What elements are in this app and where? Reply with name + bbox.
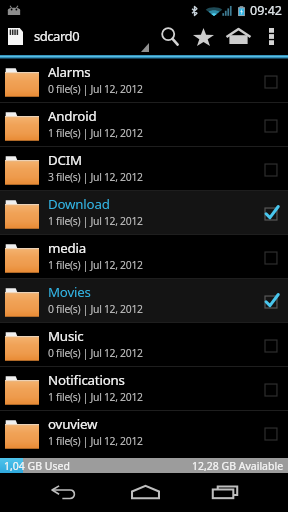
staticText: Download	[48, 195, 110, 213]
button[interactable]: Notifications	[0, 367, 288, 411]
button[interactable]: Select DCIM	[254, 147, 288, 191]
button[interactable]: Select Android	[254, 103, 288, 147]
button[interactable]: Select Download	[254, 191, 288, 235]
button[interactable]: Select Alarms	[254, 59, 288, 103]
staticText: DCIM	[48, 151, 82, 169]
button[interactable]: Recents	[193, 473, 257, 511]
button[interactable]: DCIM	[0, 147, 288, 191]
button[interactable]: Android	[0, 103, 288, 147]
staticText: 1 file(s) | Jul 12, 2012	[48, 258, 143, 272]
button[interactable]: Select Notifications	[254, 367, 288, 411]
staticText: 1 file(s) | Jul 12, 2012	[48, 126, 143, 140]
button[interactable]: media	[0, 235, 288, 279]
staticText: 3 file(s) | Jul 12, 2012	[48, 170, 143, 184]
staticText: 1 file(s) | Jul 12, 2012	[48, 434, 143, 448]
staticText: Alarms	[48, 63, 91, 81]
staticText: media	[48, 239, 86, 257]
staticText: 0 file(s) | Jul 12, 2012	[48, 346, 143, 360]
staticText: sdcard0	[34, 27, 80, 45]
staticText: 0 file(s) | Jul 12, 2012	[48, 82, 143, 96]
staticText: 09:42	[250, 2, 282, 19]
staticText: Movies	[48, 283, 91, 301]
button[interactable]: Select ovuview	[254, 411, 288, 455]
button[interactable]: Download	[0, 191, 288, 235]
button[interactable]: Home	[113, 473, 177, 511]
button[interactable]: ovuview	[0, 411, 288, 455]
button[interactable]: Alarms	[0, 59, 288, 103]
staticText: Music	[48, 327, 84, 345]
staticText: 1,04 GB Used	[4, 459, 70, 473]
button[interactable]: Movies	[0, 279, 288, 323]
button[interactable]: Search	[155, 17, 185, 55]
button[interactable]: Back	[32, 473, 96, 511]
button[interactable]: Select media	[254, 235, 288, 279]
staticText: Android	[48, 107, 97, 125]
button[interactable]: Select Movies	[254, 279, 288, 323]
button[interactable]: Select Music	[254, 323, 288, 367]
staticText: ovuview	[48, 415, 98, 433]
button[interactable]: Music	[0, 323, 288, 367]
staticText: 1 file(s) | Jul 12, 2012	[48, 390, 143, 404]
button[interactable]: Home	[223, 17, 253, 55]
button[interactable]: Favorites	[188, 17, 218, 55]
staticText: 1 file(s) | Jul 12, 2012	[48, 214, 143, 228]
staticText: 0 file(s) | Jul 12, 2012	[48, 302, 143, 316]
staticText: Notifications	[48, 371, 125, 389]
staticText: 12,28 GB Available	[192, 459, 284, 473]
button[interactable]: More options	[261, 17, 281, 55]
